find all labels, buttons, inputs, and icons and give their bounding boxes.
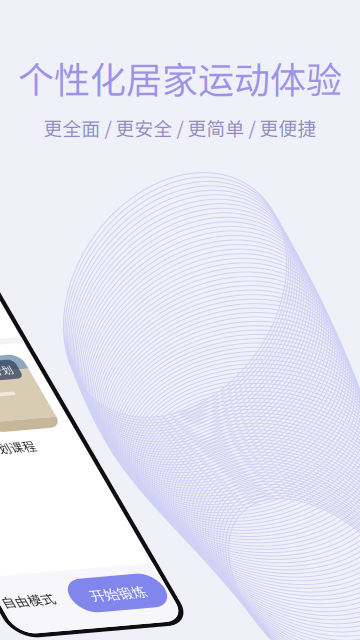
button[interactable]: Achievements [0, 294, 28, 334]
staticText: 31 [2, 394, 22, 419]
staticText: 三 [5, 363, 20, 384]
staticText: 个性化居家运动体验 [18, 52, 342, 104]
staticText: 更全面 / 更安全 / 更简单 / 更便捷 [43, 114, 316, 141]
